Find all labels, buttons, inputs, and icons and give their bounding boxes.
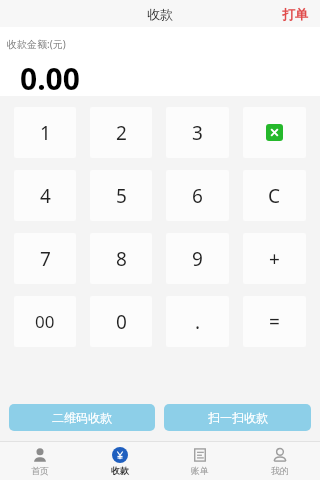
staticText: 账单 — [191, 465, 209, 476]
button[interactable]: 5 — [90, 170, 152, 221]
staticText: 首页 — [31, 465, 49, 476]
button[interactable]: 收款 — [80, 442, 160, 480]
button[interactable]: 8 — [90, 233, 152, 284]
button[interactable]: 0 — [90, 296, 152, 347]
button[interactable]: 扫一扫收款 — [164, 404, 311, 431]
staticText: 收款 — [111, 465, 129, 476]
staticText: 4 — [40, 183, 51, 209]
button[interactable]: Decimal point — [166, 296, 229, 347]
staticText: 收款金额:(元) — [7, 37, 66, 51]
button[interactable]: 4 — [14, 170, 76, 221]
button[interactable]: 00 — [14, 296, 76, 347]
staticText: 扫一扫收款 — [208, 410, 268, 425]
staticText: 我的 — [271, 465, 289, 476]
staticText: 6 — [192, 183, 203, 209]
button[interactable]: 6 — [166, 170, 229, 221]
button[interactable]: 9 — [166, 233, 229, 284]
staticText: C — [268, 183, 281, 209]
button[interactable]: 首页 — [0, 442, 80, 480]
staticText: 0 — [116, 309, 127, 335]
button[interactable]: 我的 — [240, 442, 320, 480]
staticText: 1 — [40, 120, 51, 146]
button[interactable]: Equals — [243, 296, 306, 347]
button[interactable]: 账单 — [160, 442, 240, 480]
staticText: 5 — [116, 183, 127, 209]
button[interactable]: 打单 — [270, 2, 320, 26]
staticText: = — [269, 309, 280, 335]
button[interactable]: Clear — [243, 170, 306, 221]
staticText: 00 — [35, 310, 55, 333]
staticText: 2 — [116, 120, 127, 146]
button[interactable]: 二维码收款 — [9, 404, 155, 431]
staticText: 8 — [116, 246, 127, 272]
staticText: 二维码收款 — [52, 410, 112, 425]
staticText: 0.00 — [20, 58, 80, 96]
staticText: 打单 — [282, 6, 308, 22]
button[interactable]: 1 — [14, 107, 76, 158]
button[interactable]: Delete — [243, 107, 306, 158]
button[interactable]: 2 — [90, 107, 152, 158]
staticText: . — [195, 309, 201, 335]
staticText: 收款 — [147, 6, 173, 22]
staticText: 7 — [40, 246, 51, 272]
button[interactable]: 3 — [166, 107, 229, 158]
button[interactable]: Plus — [243, 233, 306, 284]
staticText: 3 — [192, 120, 203, 146]
staticText: 9 — [192, 246, 203, 272]
staticText: + — [269, 246, 280, 272]
button[interactable]: 7 — [14, 233, 76, 284]
